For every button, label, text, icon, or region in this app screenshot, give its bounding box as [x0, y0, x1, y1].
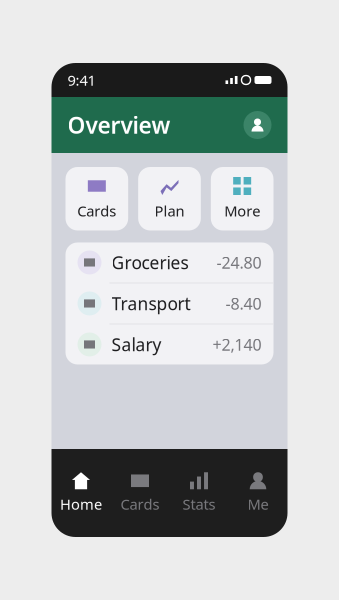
button[interactable]: Me — [228, 464, 287, 522]
button[interactable]: Cards — [110, 464, 169, 522]
button[interactable]: More — [211, 167, 273, 230]
staticText: Plan — [154, 201, 184, 220]
staticText: Cards — [77, 201, 116, 220]
staticText: Transport — [111, 292, 190, 315]
staticText: Salary — [111, 333, 161, 356]
button[interactable]: Stats — [169, 464, 228, 522]
staticText: -24.80 — [216, 252, 261, 273]
staticText: Cards — [120, 494, 159, 514]
button[interactable]: Transport — [65, 283, 273, 323]
staticText: Stats — [182, 494, 215, 514]
staticText: Home — [60, 494, 102, 514]
staticText: More — [224, 201, 260, 220]
button[interactable]: Plan — [138, 167, 201, 230]
staticText: Groceries — [111, 251, 188, 274]
button[interactable]: Profile — [243, 111, 271, 139]
button[interactable]: Salary — [65, 324, 273, 364]
button[interactable]: Groceries — [65, 242, 273, 282]
staticText: -8.40 — [225, 293, 261, 314]
staticText: 9:41 — [67, 70, 95, 90]
button[interactable]: Home — [51, 464, 110, 522]
staticText: Me — [247, 494, 268, 514]
staticText: Overview — [67, 110, 170, 140]
button[interactable]: Cards — [65, 167, 128, 230]
staticText: +2,140 — [212, 334, 261, 355]
